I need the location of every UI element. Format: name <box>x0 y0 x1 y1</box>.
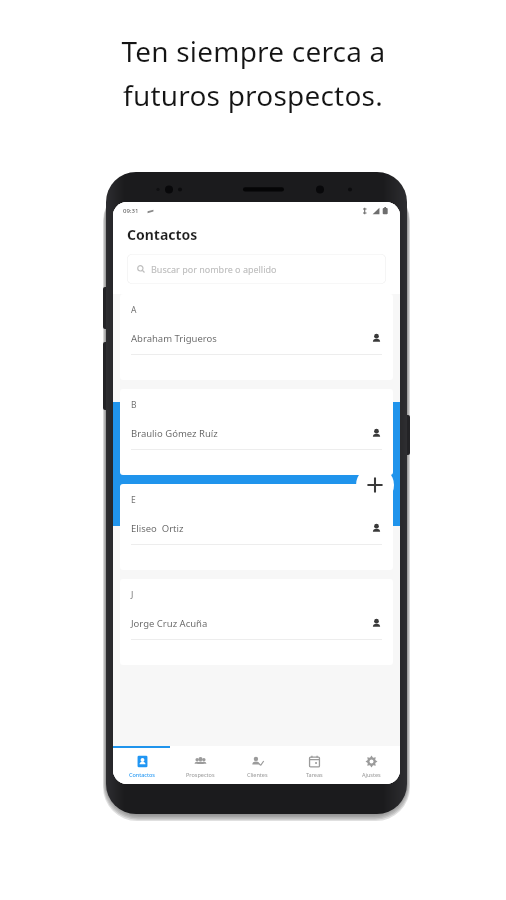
staticText: Ajustes <box>362 771 381 778</box>
button[interactable]: A <box>120 294 393 380</box>
staticText: A <box>131 304 137 316</box>
staticText: Ten siempre cerca a <box>121 32 386 70</box>
button[interactable]: Agregar contacto <box>356 466 394 504</box>
staticText: Prospectos <box>186 771 215 778</box>
staticText: B <box>131 399 137 411</box>
button[interactable]: Contactos <box>113 748 171 784</box>
staticText: 09:31 <box>123 207 139 215</box>
button[interactable]: Clientes <box>229 748 286 784</box>
button[interactable]: Prospectos <box>171 748 229 784</box>
staticText: futuros prospectos. <box>123 76 383 114</box>
staticText: Contactos <box>129 771 155 778</box>
button[interactable]: E <box>120 484 393 570</box>
staticText: Clientes <box>247 771 268 778</box>
staticText: Tareas <box>306 771 323 778</box>
staticText: J <box>131 589 134 601</box>
button[interactable]: J <box>120 579 393 665</box>
button[interactable]: Buscar por nombre o apellido <box>127 254 386 284</box>
staticText: Contactos <box>127 225 198 244</box>
button[interactable]: Ajustes <box>343 748 400 784</box>
staticText: Abraham Trigueros <box>131 332 217 345</box>
staticText: Eliseo Ortiz <box>131 522 184 535</box>
staticText: Jorge Cruz Acuña <box>131 617 208 630</box>
staticText: Braulio Gómez Ruíz <box>131 427 218 440</box>
staticText: E <box>131 494 136 506</box>
button[interactable]: Tareas <box>286 748 343 784</box>
staticText: Buscar por nombre o apellido <box>151 263 277 275</box>
button[interactable]: B <box>120 389 393 475</box>
